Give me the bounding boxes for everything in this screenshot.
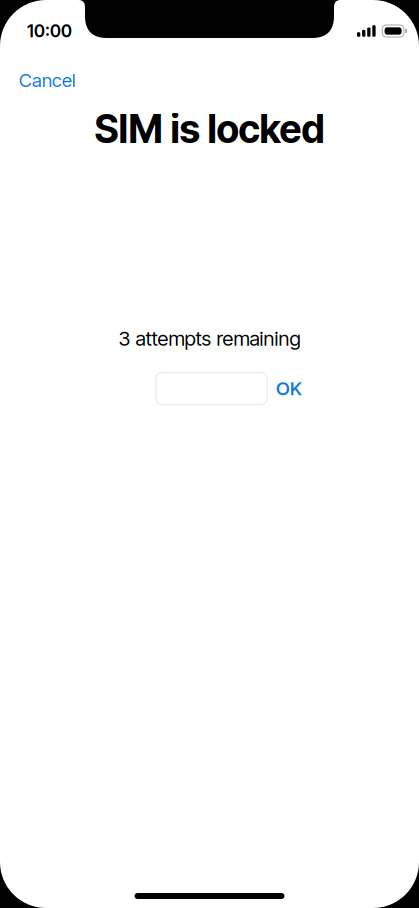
staticText: Cancel (19, 69, 76, 92)
button[interactable]: Cancel (17, 62, 78, 99)
staticText: 10:00 (27, 20, 72, 41)
staticText: OK (276, 377, 302, 400)
staticText: SIM is locked (94, 106, 324, 152)
staticText: 3 attempts remaining (118, 326, 300, 351)
button[interactable]: OK (276, 372, 302, 405)
